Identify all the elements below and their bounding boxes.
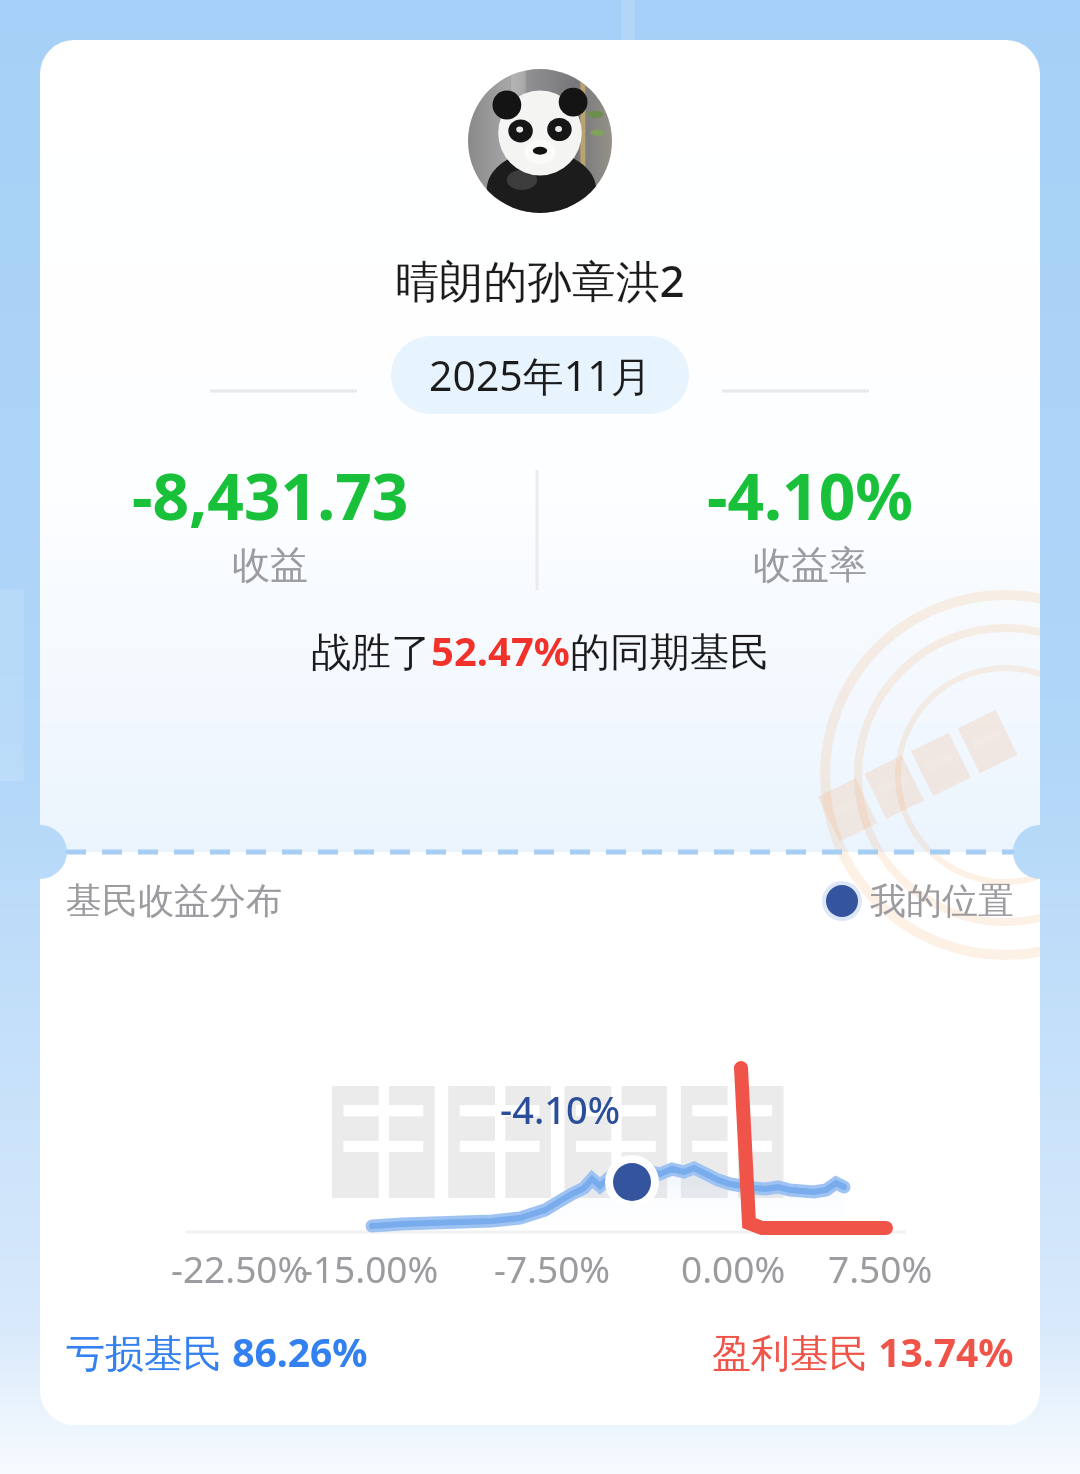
staticText: -15.00% (301, 1243, 439, 1293)
button[interactable]: Profile avatar (461, 62, 619, 220)
staticText: -7.50% (494, 1243, 611, 1293)
button[interactable]: -8,431.73 (0, 452, 540, 589)
staticText: 我的位置 (870, 878, 1014, 923)
staticText: 亏损基民 86.26% (66, 1325, 368, 1378)
staticText: 晴朗的孙章洪2 (395, 250, 685, 310)
staticText: 0.00% (681, 1243, 786, 1293)
staticText: 战胜了52.47%的同期基民 (311, 623, 770, 678)
staticText: -4.10% (500, 1083, 621, 1135)
staticText: 收益率 (753, 541, 867, 589)
staticText: -4.10% (707, 452, 914, 539)
staticText: 2025年11月 (429, 347, 652, 403)
staticText: -8,431.73 (132, 452, 409, 539)
staticText: -22.50% (171, 1243, 309, 1293)
staticText: 收益 (232, 541, 308, 589)
staticText: 7.50% (828, 1243, 933, 1293)
button[interactable]: 我的位置 (822, 878, 1014, 923)
staticText: 基民收益分布 (66, 878, 282, 923)
button[interactable]: 2025年11月 (391, 336, 689, 414)
button[interactable]: -4.10% (540, 452, 1080, 589)
staticText: 盈利基民 13.74% (712, 1325, 1014, 1378)
